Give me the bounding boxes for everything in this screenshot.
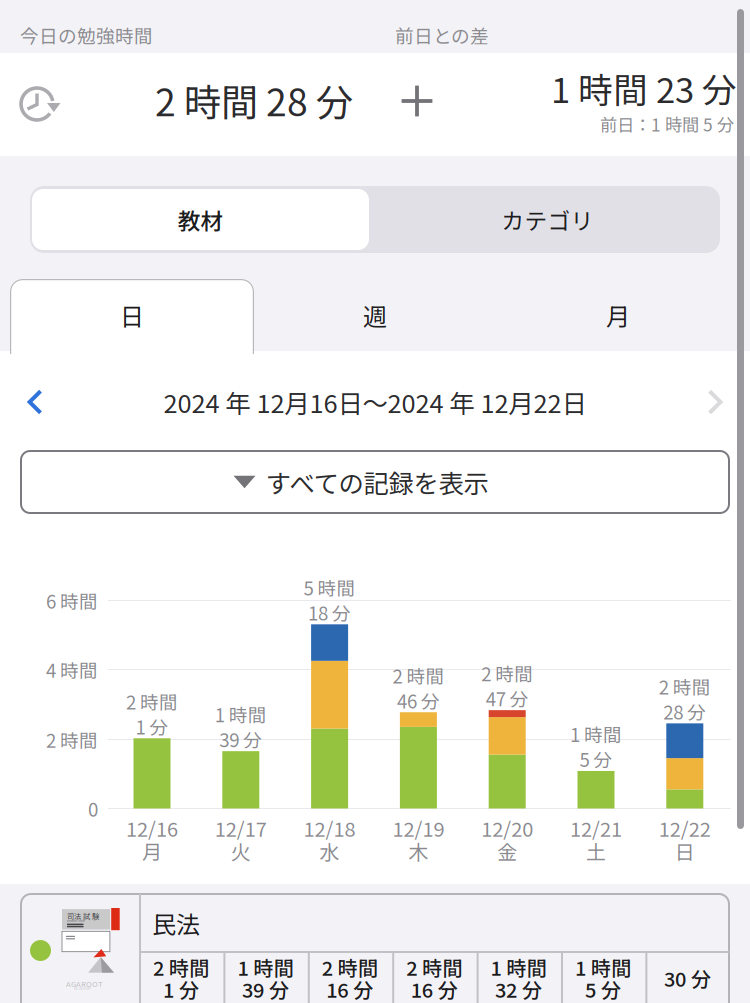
staticText: 18 分 [308,599,351,626]
staticText: 16 分 [411,974,458,1003]
staticText: 1 時間 23 分 [551,63,737,113]
staticText: 水 [320,836,340,865]
staticText: 39 分 [242,974,289,1003]
staticText: 2 時間 [322,952,378,981]
staticText: 2 時間 [406,952,462,981]
staticText: 39 分 [219,726,262,753]
staticText: 教材 [177,203,223,236]
staticText: AGAROOT [66,978,103,989]
staticText: 今日の勉強時間 [20,21,153,48]
button[interactable]: 月 [496,279,740,351]
staticText: 月 [606,298,630,332]
staticText: 2 時間 [659,673,711,700]
staticText: 週 [363,298,387,332]
staticText: 12/19 [392,813,444,842]
staticText: 1 時間 [491,952,547,981]
staticText: 28 分 [663,698,706,725]
staticText: 月 [142,836,162,865]
staticText: 16 分 [326,974,373,1003]
staticText: 32 分 [495,974,542,1003]
button[interactable]: すべての記録を表示 [21,451,729,513]
staticText: 1 分 [135,713,168,740]
staticText: 土 [586,836,606,865]
staticText: カテゴリ [501,203,593,236]
staticText: 前日：1 時間 5 分 [600,111,734,137]
staticText: 47 分 [486,685,529,712]
staticText: 5 時間 [304,574,356,601]
staticText: ACADEMY [74,985,91,991]
staticText: 12/22 [659,813,711,842]
staticText: 日 [120,298,144,332]
staticText: 12/20 [481,813,533,842]
staticText: 1 時間 [237,952,293,981]
staticText: 1 時間 [575,952,631,981]
staticText: 30 分 [664,963,711,992]
staticText: 2 時間 28 分 [155,73,353,127]
staticText: 2 時間 [126,688,178,715]
staticText: 民法 [152,906,200,940]
staticText: 1 時間 [215,701,267,728]
staticText: 火 [231,836,251,865]
button[interactable]: 日 [10,279,254,351]
button[interactable]: 週 [253,279,497,351]
staticText: 6 時間 [46,587,98,614]
staticText: 5 分 [585,974,621,1003]
staticText: 木 [408,836,428,865]
staticText: 前日との差 [395,21,489,48]
staticText: 12/16 [126,813,178,842]
staticText: 12/17 [215,813,267,842]
staticText: すべての記録を表示 [265,464,488,500]
staticText: 2024 年 12月16日〜2024 年 12月22日 [163,384,586,420]
staticText: 12/21 [570,813,622,842]
staticText: 日 [675,836,695,865]
staticText: 2 時間 [153,952,209,981]
staticText: 4 時間 [46,656,98,683]
staticText: 2 時間 [481,660,533,687]
staticText: 2 時間 [392,662,444,689]
staticText: 司法 試 験 [67,911,99,921]
staticText: 46 分 [397,687,440,714]
staticText: 12/18 [304,813,356,842]
staticText: 1 分 [163,974,199,1003]
staticText: 金 [497,836,517,865]
staticText: 1 時間 [570,720,622,747]
button[interactable]: 司法 試 験 [0,0,750,1003]
staticText: 0 [88,795,98,822]
button[interactable]: カテゴリ [375,186,720,253]
button[interactable]: 教材 [30,186,371,253]
staticText: 2 時間 [46,726,98,753]
staticText: 5 分 [579,745,612,772]
button[interactable]: 次の週 [680,374,750,430]
button[interactable]: 前の週 [0,374,70,430]
